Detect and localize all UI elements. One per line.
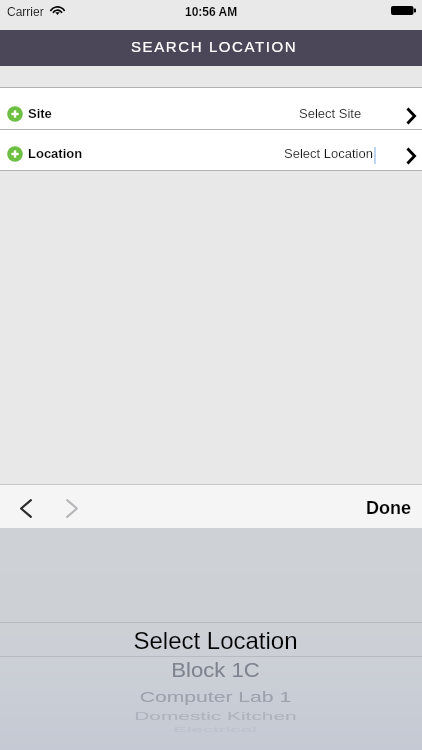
staticText: SEARCH LOCATION xyxy=(131,38,298,55)
staticText: Select Location xyxy=(133,627,298,654)
staticText: Domestic Kitchen xyxy=(134,710,297,722)
staticText: Location xyxy=(28,146,83,161)
staticText: Electrical xyxy=(173,725,257,733)
button[interactable]: Site xyxy=(0,88,422,129)
button[interactable]: Next xyxy=(55,489,89,527)
button[interactable]: Previous xyxy=(9,489,43,527)
staticText: Site xyxy=(28,106,52,121)
staticText: 10:56 AM xyxy=(185,5,238,18)
button[interactable]: Location xyxy=(0,130,422,170)
staticText: Block 1C xyxy=(171,659,260,681)
staticText: Select Location xyxy=(284,146,373,161)
staticText: Carrier xyxy=(7,5,44,18)
staticText: Done xyxy=(366,498,411,518)
staticText: Select Site xyxy=(299,106,362,121)
staticText: Computer Lab 1 xyxy=(139,688,291,705)
button[interactable]: Done xyxy=(354,489,422,527)
